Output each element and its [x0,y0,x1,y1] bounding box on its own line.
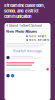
staticText: Grand Tolbert School [9,24,42,27]
staticText: 100% Reach [29,35,47,38]
staticText: communication [4,14,31,19]
staticText: 100% Delivery [29,38,49,42]
button[interactable]: Grand Tolbert School [4,23,50,28]
staticText: New Photo Albums [6,30,37,34]
staticText: View full message [13,49,42,53]
staticText: school, and district [4,8,38,13]
staticText: Streamline classroom, [4,3,45,8]
